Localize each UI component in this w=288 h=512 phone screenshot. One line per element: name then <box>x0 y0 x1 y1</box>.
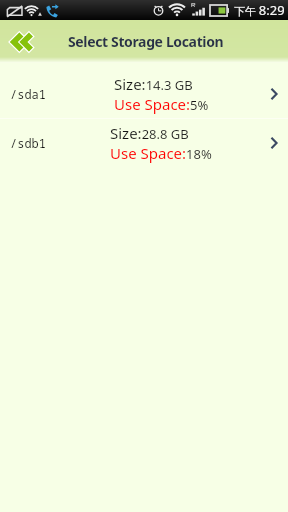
staticText: 下午 8:29 <box>234 1 285 19</box>
staticText: Use Space:5% <box>114 94 209 114</box>
button[interactable]: /sda1 <box>0 70 288 118</box>
staticText: Size:14.3 GB <box>114 74 193 94</box>
staticText: Use Space:18% <box>110 143 212 163</box>
button[interactable]: Back <box>3 20 43 63</box>
staticText: Size:28.8 GB <box>110 123 189 143</box>
button[interactable]: /sdb1 <box>0 119 288 167</box>
staticText: /sdb1 <box>10 135 62 151</box>
staticText: /sda1 <box>10 86 62 102</box>
staticText: Select Storage Location <box>68 32 224 51</box>
